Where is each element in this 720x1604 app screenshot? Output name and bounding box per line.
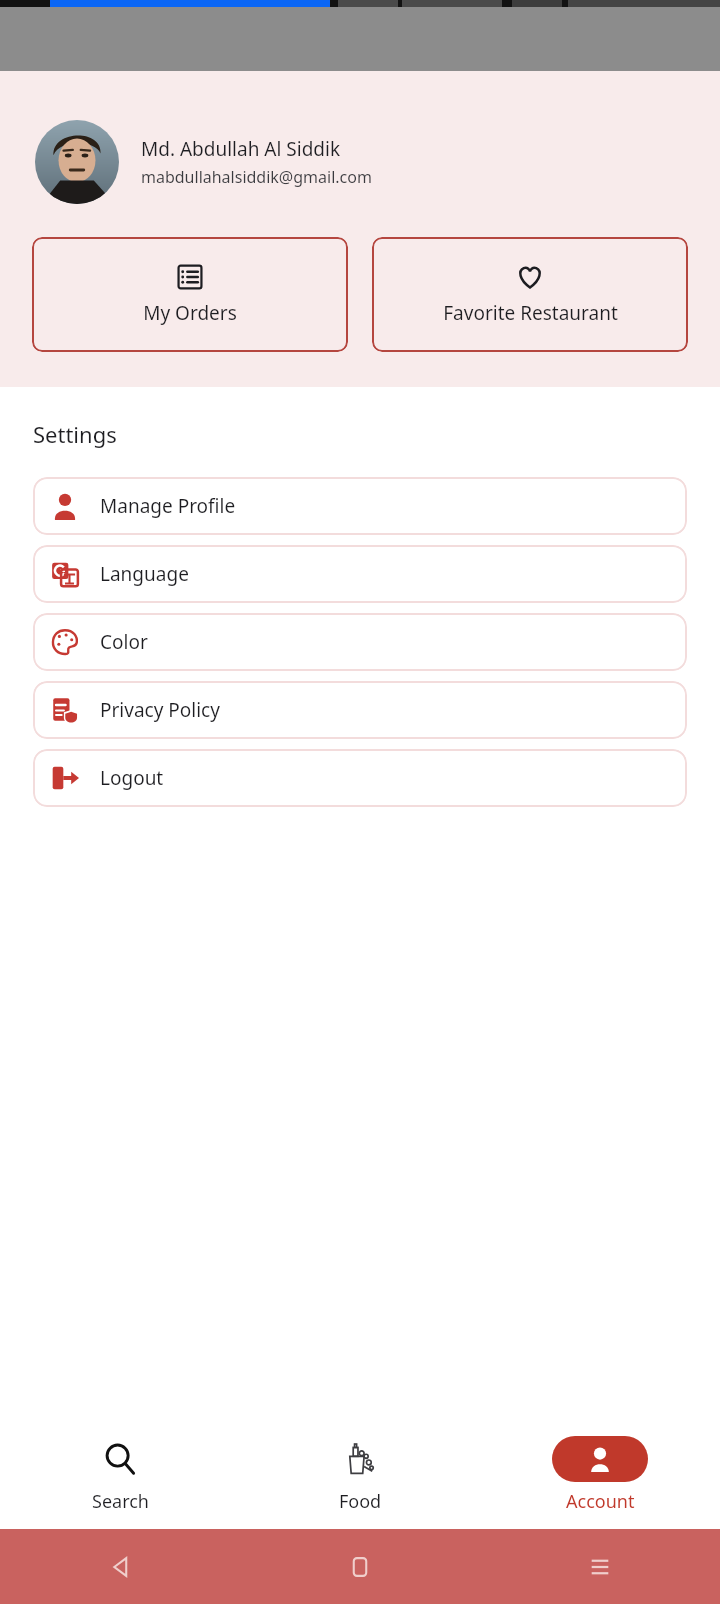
staticText: Color [100, 629, 148, 655]
button[interactable]: Manage Profile [33, 477, 687, 535]
button[interactable]: Food [240, 1429, 480, 1520]
staticText: Food [339, 1489, 382, 1514]
button[interactable]: Privacy Policy [33, 681, 687, 739]
button[interactable]: Menu [480, 1529, 720, 1604]
staticText: Account [566, 1489, 635, 1514]
button[interactable]: Language [33, 545, 687, 603]
staticText: Privacy Policy [100, 697, 220, 723]
button[interactable]: Account [480, 1429, 720, 1520]
button[interactable]: My Orders [32, 237, 348, 352]
button[interactable]: Search [0, 1429, 240, 1520]
button[interactable]: Logout [33, 749, 687, 807]
button[interactable]: Home [240, 1529, 480, 1604]
staticText: Favorite Restaurant [443, 300, 618, 326]
staticText: Logout [100, 765, 164, 791]
staticText: My Orders [143, 300, 237, 326]
button[interactable]: Favorite Restaurant [372, 237, 688, 352]
staticText: Search [92, 1489, 149, 1514]
button[interactable]: Color [33, 613, 687, 671]
staticText: Md. Abdullah Al Siddik [141, 136, 341, 162]
button[interactable]: Back [0, 1529, 240, 1604]
staticText: Manage Profile [100, 493, 236, 519]
staticText: Language [100, 561, 189, 587]
staticText: Settings [33, 419, 117, 449]
staticText: mabdullahalsiddik@gmail.com [141, 166, 372, 188]
button[interactable]: Profile photo [35, 120, 119, 204]
